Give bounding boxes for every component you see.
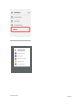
- button[interactable]: Settings item: [15, 57, 29, 60]
- button[interactable]: Option: [11, 19, 30, 23]
- button[interactable]: Selected option: [11, 27, 30, 32]
- button[interactable]: Option: [11, 23, 30, 27]
- button[interactable]: Settings item: [15, 63, 29, 65]
- button[interactable]: Settings item: [15, 60, 29, 63]
- button[interactable]: Settings item: [15, 52, 29, 55]
- button[interactable]: Option: [11, 15, 30, 19]
- button[interactable]: Settings item: [15, 55, 29, 57]
